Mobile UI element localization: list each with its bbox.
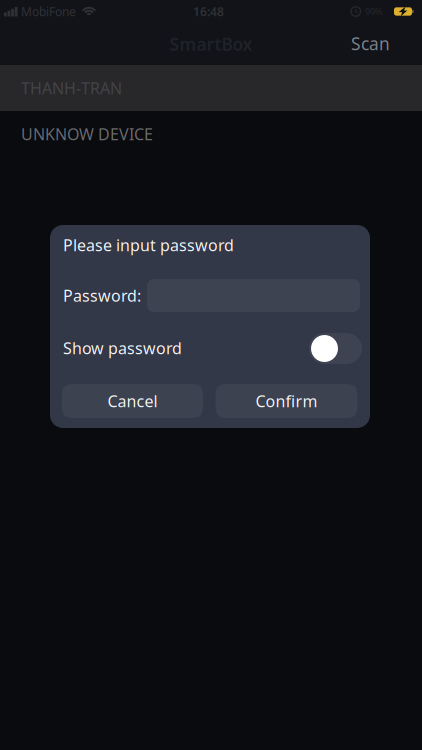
button[interactable]: Show password: [309, 333, 362, 364]
staticText: Show password: [63, 337, 182, 359]
button[interactable]: Scan: [351, 32, 390, 55]
button[interactable]: Confirm: [215, 384, 357, 418]
staticText: Cancel: [107, 390, 157, 412]
button[interactable]: UNKNOW DEVICE: [0, 111, 422, 157]
staticText: Password:: [63, 285, 141, 306]
staticText: SmartBox: [169, 32, 252, 55]
staticText: MobiFone: [21, 3, 76, 19]
button[interactable]: Cancel: [62, 384, 203, 418]
staticText: Please input password: [63, 234, 234, 256]
staticText: 99%: [365, 5, 383, 18]
button[interactable]: THANH-TRAN: [0, 65, 422, 111]
staticText: 16:48: [193, 3, 224, 19]
staticText: UNKNOW DEVICE: [21, 123, 153, 145]
staticText: Confirm: [255, 390, 317, 412]
staticText: Scan: [351, 32, 390, 55]
staticText: THANH-TRAN: [21, 77, 122, 99]
